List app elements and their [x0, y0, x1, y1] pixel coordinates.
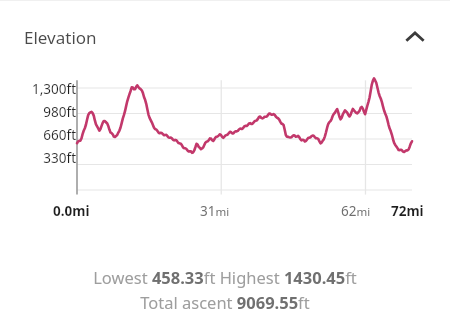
- staticText: 72mi: [391, 202, 424, 220]
- button[interactable]: Elevation: [0, 1, 450, 73]
- staticText: 980ft: [43, 103, 76, 121]
- staticText: 62mi: [341, 202, 371, 220]
- staticText: Lowest 458.33ft Highest 1430.45ft: [93, 266, 357, 288]
- button[interactable]: Collapse elevation section: [398, 20, 432, 54]
- staticText: Elevation: [24, 26, 97, 49]
- staticText: 0.0mi: [53, 202, 90, 220]
- staticText: 660ft: [43, 126, 76, 144]
- staticText: 1,300ft: [31, 80, 76, 98]
- staticText: Total ascent 9069.55ft: [140, 291, 310, 313]
- staticText: 31mi: [200, 202, 230, 220]
- staticText: 330ft: [43, 149, 76, 167]
